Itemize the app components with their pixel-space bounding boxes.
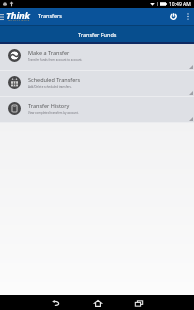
button[interactable]: Transfer History: [0, 97, 194, 123]
staticText: MUTUAL BANK: [8, 18, 30, 21]
button[interactable]: Scheduled Transfers: [0, 71, 194, 97]
button[interactable]: Log out: [165, 8, 182, 25]
staticText: Transfer funds from account to account.: [28, 58, 83, 62]
button[interactable]: Back: [49, 296, 63, 310]
button[interactable]: Open navigation menu: [0, 8, 6, 25]
button[interactable]: Make a Transfer: [0, 44, 194, 71]
staticText: Transfer History: [28, 102, 70, 109]
button[interactable]: More options: [182, 8, 194, 25]
staticText: Think: [6, 9, 30, 22]
button[interactable]: Home: [91, 296, 105, 310]
staticText: Transfers: [38, 12, 62, 19]
staticText: Make a Transfer: [28, 49, 70, 56]
staticText: Transfer Funds: [78, 31, 117, 38]
staticText: View completed transfers by account.: [28, 111, 79, 115]
staticText: Scheduled Transfers: [28, 76, 81, 83]
staticText: 10:49 AM: [169, 1, 191, 8]
staticText: Add/Delete scheduled transfers.: [28, 85, 72, 89]
button[interactable]: Recent apps: [132, 296, 146, 310]
